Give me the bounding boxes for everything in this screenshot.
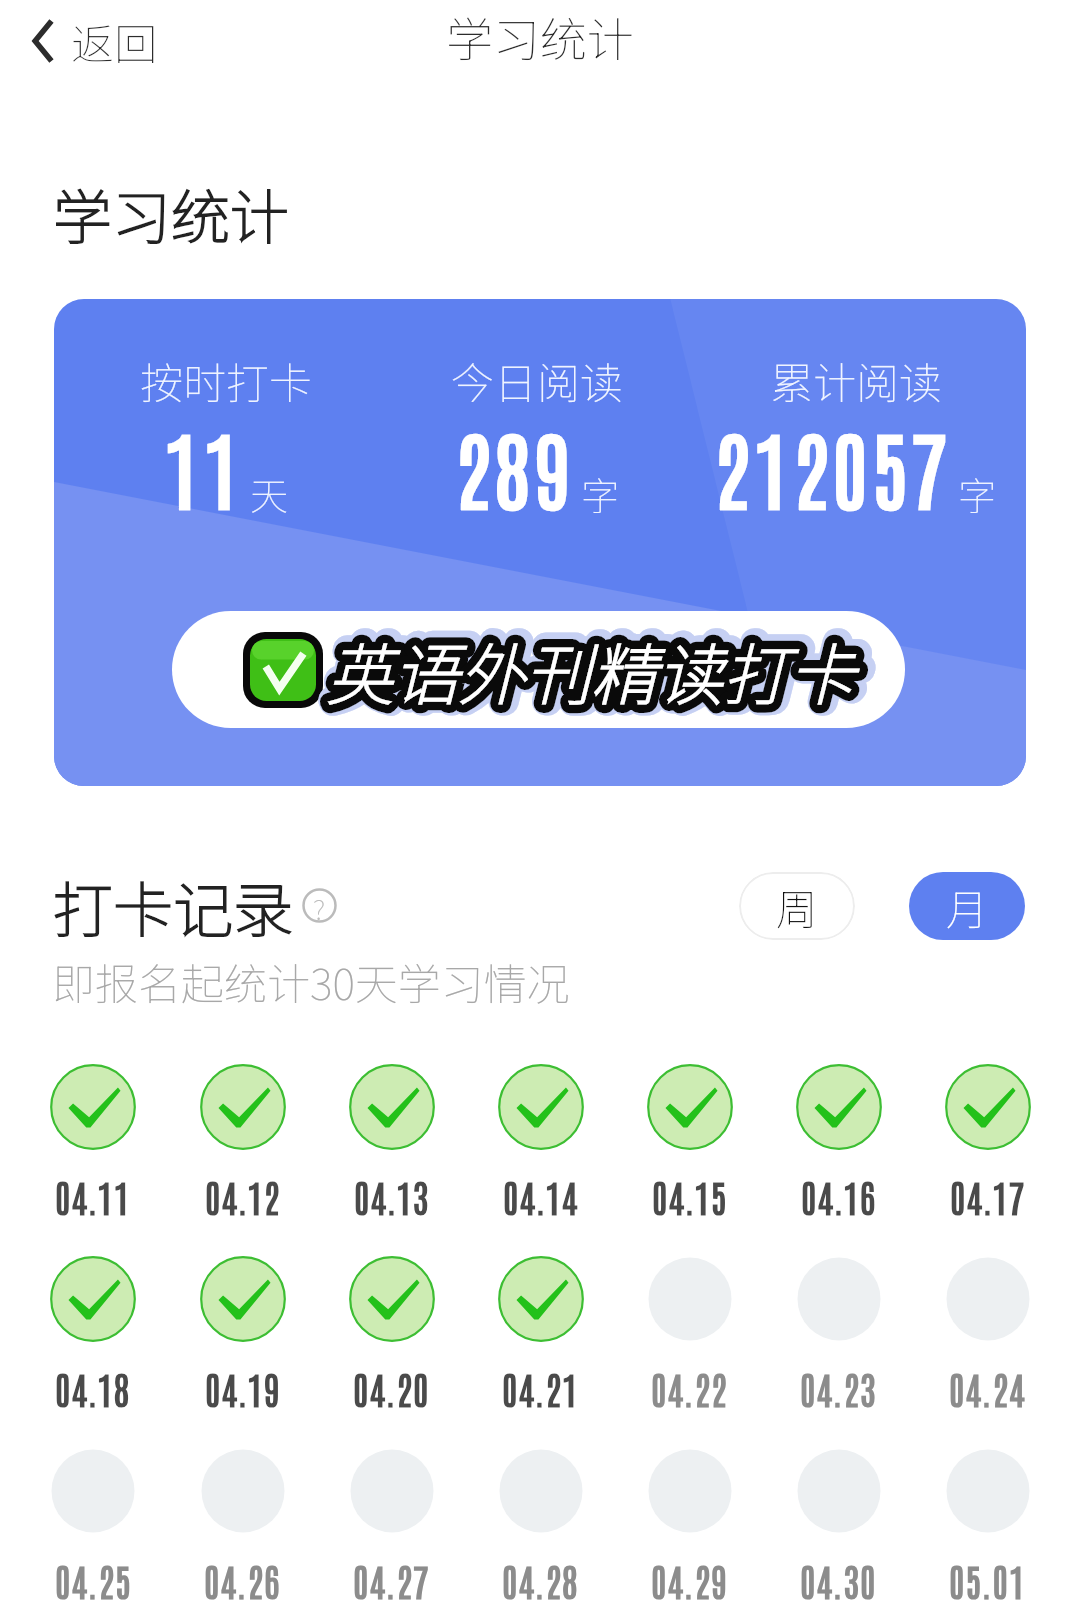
button[interactable]: 04.11 xyxy=(18,1064,168,1220)
staticText: 04.30 xyxy=(800,1556,877,1604)
staticText: 04.12 xyxy=(205,1172,281,1220)
staticText: 11 xyxy=(164,411,243,521)
staticText: 04.29 xyxy=(651,1556,728,1604)
staticText: 英语外刊精读打卡 xyxy=(330,620,858,716)
staticText: 返回 xyxy=(71,10,157,72)
staticText: 04.15 xyxy=(652,1172,728,1220)
button[interactable]: 04.24 xyxy=(913,1256,1062,1412)
button[interactable]: 月 xyxy=(909,872,1025,940)
button[interactable]: 04.15 xyxy=(615,1064,764,1220)
button[interactable]: 04.20 xyxy=(317,1256,466,1412)
staticText: 04.19 xyxy=(205,1364,281,1412)
staticText: 04.20 xyxy=(353,1364,430,1412)
staticText: 字 xyxy=(958,466,997,521)
button[interactable]: Help xyxy=(302,888,337,923)
staticText: 04.17 xyxy=(950,1172,1026,1220)
button[interactable]: 04.13 xyxy=(317,1064,466,1220)
staticText: 04.28 xyxy=(502,1556,579,1604)
button[interactable]: 04.27 xyxy=(317,1448,466,1604)
staticText: 学习统计 xyxy=(446,2,634,70)
staticText: 289 xyxy=(455,411,574,521)
button[interactable]: 04.30 xyxy=(764,1448,913,1604)
staticText: 累计阅读 xyxy=(770,349,942,411)
button[interactable]: 04.19 xyxy=(168,1256,317,1412)
staticText: 04.21 xyxy=(502,1364,579,1412)
staticText: 月 xyxy=(946,876,989,937)
button[interactable]: 周 xyxy=(739,872,855,940)
button[interactable]: 04.26 xyxy=(168,1448,317,1604)
staticText: 04.23 xyxy=(800,1364,877,1412)
button[interactable]: 04.17 xyxy=(913,1064,1062,1220)
staticText: 04.18 xyxy=(55,1364,131,1412)
button[interactable]: 04.12 xyxy=(168,1064,317,1220)
staticText: 04.11 xyxy=(55,1172,131,1220)
button[interactable]: 04.18 xyxy=(18,1256,168,1412)
staticText: 打卡记录 xyxy=(53,862,293,949)
button[interactable]: 04.14 xyxy=(466,1064,615,1220)
staticText: 04.26 xyxy=(204,1556,281,1604)
staticText: 04.13 xyxy=(354,1172,430,1220)
staticText: 04.14 xyxy=(503,1172,579,1220)
staticText: 05.01 xyxy=(949,1556,1026,1604)
staticText: 英语外刊精读打卡 xyxy=(327,622,855,718)
staticText: 今日阅读 xyxy=(451,349,623,411)
staticText: ? xyxy=(313,888,326,923)
staticText: 04.24 xyxy=(949,1364,1026,1412)
button[interactable]: 05.01 xyxy=(913,1448,1062,1604)
button[interactable]: 04.29 xyxy=(615,1448,764,1604)
button[interactable]: 04.25 xyxy=(18,1448,168,1604)
button[interactable]: 返回 xyxy=(25,0,165,82)
button[interactable]: 04.22 xyxy=(615,1256,764,1412)
staticText: 04.22 xyxy=(651,1364,728,1412)
staticText: 按时打卡 xyxy=(140,349,312,411)
button[interactable]: 04.28 xyxy=(466,1448,615,1604)
staticText: 212057 xyxy=(714,411,951,521)
staticText: 即报名起统计30天学习情况 xyxy=(52,950,570,1012)
button[interactable]: 英语外刊精读打卡 xyxy=(172,611,905,728)
staticText: 字 xyxy=(581,466,620,521)
staticText: 学习统计 xyxy=(53,171,290,256)
staticText: 04.27 xyxy=(353,1556,430,1604)
staticText: 英语外刊精读打卡 xyxy=(327,622,855,718)
button[interactable]: 按时打卡 xyxy=(54,299,1026,786)
staticText: 天 xyxy=(250,466,289,521)
button[interactable]: 04.23 xyxy=(764,1256,913,1412)
button[interactable]: 04.16 xyxy=(764,1064,913,1220)
button[interactable]: 04.21 xyxy=(466,1256,615,1412)
staticText: 04.16 xyxy=(801,1172,877,1220)
staticText: 周 xyxy=(776,876,819,937)
staticText: 04.25 xyxy=(55,1556,132,1604)
